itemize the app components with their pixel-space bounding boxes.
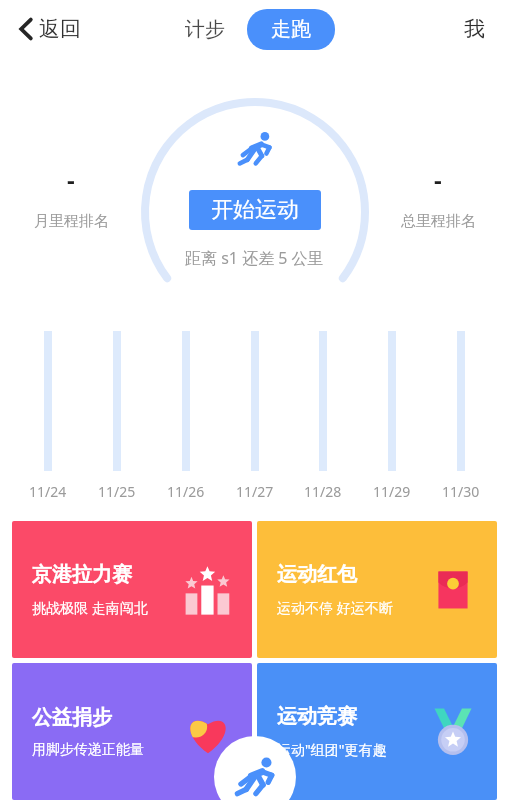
button[interactable]: 运动竞赛 (257, 663, 497, 800)
staticText: 运动"组团"更有趣 (277, 740, 387, 759)
staticText: 运动不停 好运不断 (277, 598, 393, 617)
button[interactable]: 开始运动 (189, 190, 321, 230)
staticText: 运动竞赛 (277, 704, 357, 729)
staticText: 11/26 (167, 482, 205, 501)
staticText: 开始运动 (211, 196, 299, 224)
staticText: 运动红包 (277, 562, 357, 587)
staticText: 月里程排名 (34, 212, 109, 231)
staticText: 11/30 (442, 482, 480, 501)
staticText: 京港拉力赛 (32, 562, 132, 587)
staticText: 走跑 (271, 17, 311, 42)
staticText: 11/27 (236, 482, 274, 501)
button[interactable]: 我 (458, 12, 491, 46)
button[interactable]: 开始跑步 (214, 736, 296, 800)
staticText: 距离 s1 还差 5 公里 (185, 247, 324, 269)
staticText: - (434, 163, 442, 196)
staticText: 11/29 (373, 482, 411, 501)
button[interactable]: 运动红包 (257, 521, 497, 658)
button[interactable]: 京港拉力赛 (12, 521, 252, 658)
staticText: 11/28 (304, 482, 342, 501)
staticText: 我 (464, 16, 485, 42)
staticText: 用脚步传递正能量 (32, 741, 144, 759)
button[interactable]: 计步 (175, 10, 235, 49)
button[interactable]: 返回 (14, 12, 85, 46)
staticText: 11/25 (98, 482, 136, 501)
staticText: 挑战极限 走南闯北 (32, 598, 148, 617)
button[interactable]: 公益捐步 (12, 663, 252, 800)
staticText: 返回 (39, 16, 81, 42)
staticText: 11/24 (29, 482, 67, 501)
staticText: 总里程排名 (401, 212, 476, 231)
button[interactable]: 走跑 (247, 9, 335, 50)
staticText: - (67, 163, 75, 196)
staticText: 计步 (185, 17, 225, 42)
staticText: 公益捐步 (32, 705, 112, 730)
